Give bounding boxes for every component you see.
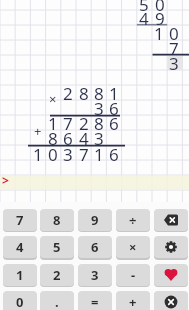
staticText: 5 [139, 0, 149, 15]
staticText: 1 [94, 143, 104, 165]
staticText: 3 [91, 266, 99, 284]
button[interactable]: 2 [40, 264, 74, 286]
button[interactable]: 4 [3, 236, 37, 258]
staticText: 8 [94, 112, 104, 134]
button[interactable]: 9 [78, 209, 112, 231]
staticText: 0 [48, 143, 58, 165]
staticText: 1 [33, 143, 43, 165]
staticText: 9 [155, 7, 165, 29]
staticText: 8 [48, 127, 58, 149]
staticText: 7 [169, 37, 179, 59]
staticText: 6 [109, 143, 119, 165]
staticText: + [34, 122, 42, 140]
button[interactable]: . [40, 291, 74, 310]
staticText: 3 [94, 97, 104, 119]
staticText: 9 [91, 211, 99, 229]
button[interactable]: 7 [3, 209, 37, 231]
button[interactable] [154, 264, 188, 286]
button[interactable]: 5 [40, 236, 74, 258]
staticText: 1 [154, 22, 164, 44]
staticText: 1 [16, 266, 24, 284]
staticText: 7 [79, 143, 89, 165]
staticText: 3 [63, 143, 73, 165]
staticText: × [49, 90, 57, 108]
staticText: 0 [155, 0, 165, 15]
staticText: × [129, 238, 137, 256]
button[interactable]: = [78, 291, 112, 310]
staticText: = [91, 293, 99, 310]
button[interactable]: - [116, 264, 150, 286]
button[interactable] [154, 236, 188, 258]
staticText: + [129, 293, 137, 310]
staticText: 4 [139, 7, 149, 29]
staticText: 2 [53, 266, 61, 284]
staticText: 8 [79, 82, 89, 104]
button[interactable] [154, 291, 188, 310]
staticText: 1 [48, 112, 58, 134]
staticText: 6 [91, 238, 99, 256]
staticText: 6 [63, 127, 73, 149]
button[interactable]: 1 [3, 264, 37, 286]
staticText: 6 [109, 97, 119, 119]
staticText: 5 [53, 238, 61, 256]
staticText: 0 [169, 22, 179, 44]
staticText: 6 [109, 112, 119, 134]
staticText: 1 [109, 82, 119, 104]
staticText: 8 [94, 82, 104, 104]
staticText: 7 [16, 211, 24, 229]
staticText: 2 [63, 82, 73, 104]
staticText: 4 [16, 238, 24, 256]
staticText: . [55, 293, 59, 310]
button[interactable] [154, 209, 188, 231]
staticText: 8 [53, 211, 61, 229]
staticText: > [2, 172, 9, 188]
staticText: 0 [16, 293, 24, 310]
staticText: 2 [79, 112, 89, 134]
staticText: 7 [63, 112, 73, 134]
button[interactable]: 0 [3, 291, 37, 310]
button[interactable]: ÷ [116, 209, 150, 231]
staticText: - [131, 266, 136, 284]
staticText: 4 [79, 127, 89, 149]
button[interactable]: × [116, 236, 150, 258]
staticText: 3 [169, 52, 179, 74]
button[interactable]: + [116, 291, 150, 310]
button[interactable]: 6 [78, 236, 112, 258]
staticText: ÷ [129, 211, 137, 229]
button[interactable]: 8 [40, 209, 74, 231]
staticText: 3 [94, 127, 104, 149]
button[interactable]: 3 [78, 264, 112, 286]
